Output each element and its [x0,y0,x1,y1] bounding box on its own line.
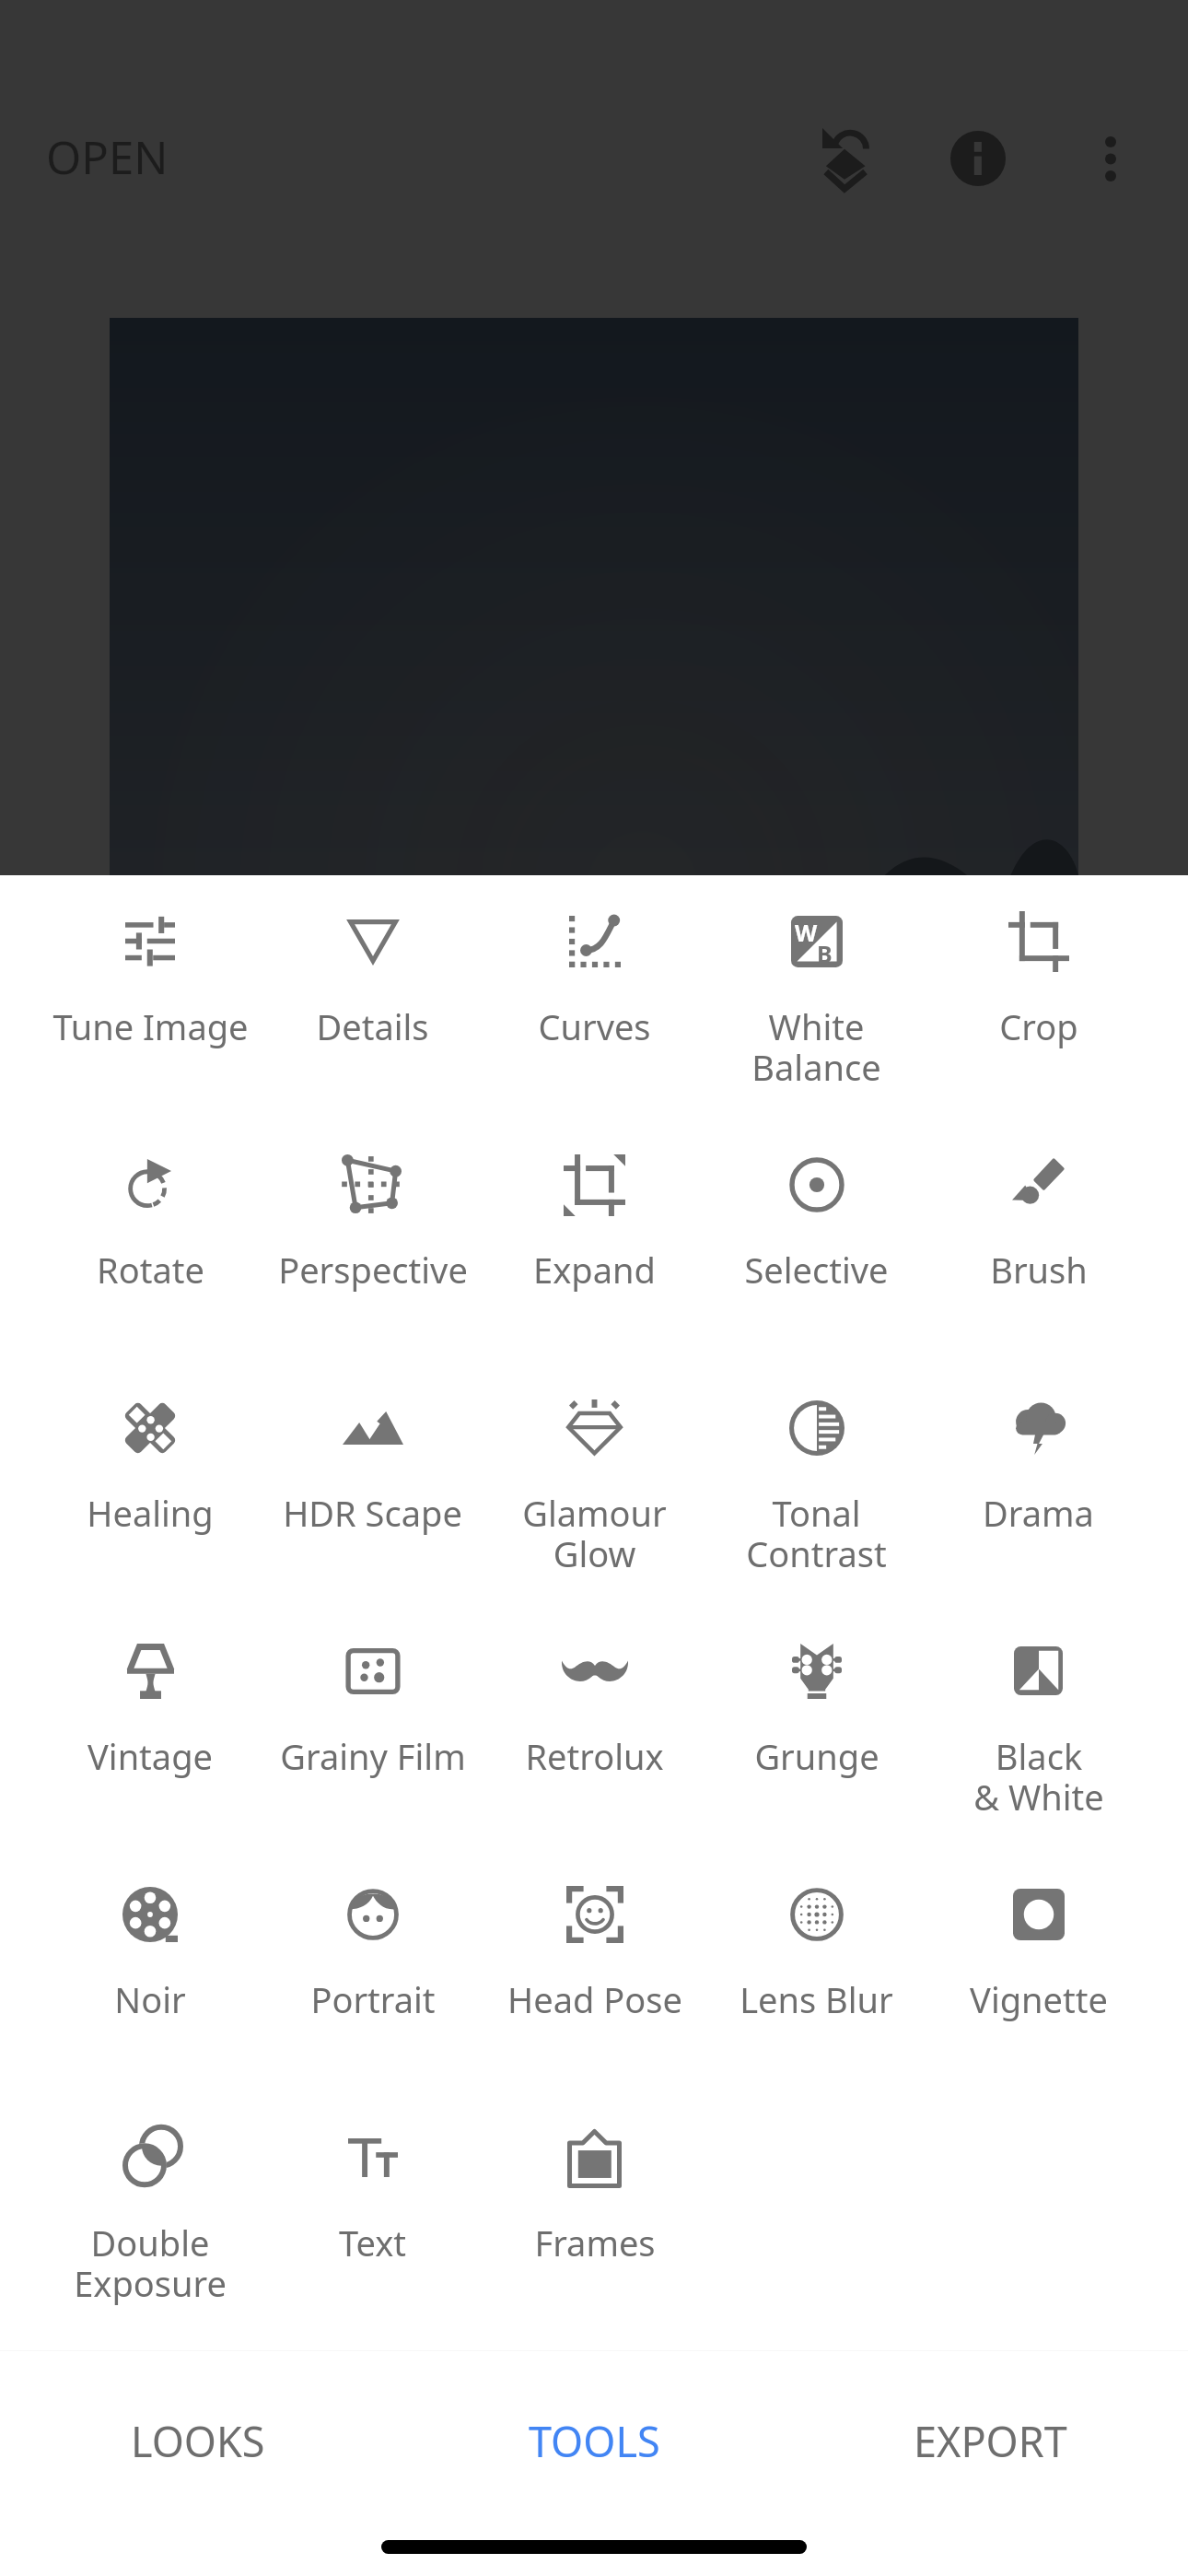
staticText: HDR Scape [283,1489,462,1537]
staticText: Healing [87,1489,214,1537]
staticText: Text [339,2219,406,2266]
button[interactable]: Text [262,2091,483,2335]
button[interactable]: LOOKS [0,2351,396,2530]
button[interactable]: Portrait [262,1848,483,2091]
staticText: Noir [114,1975,186,2023]
button[interactable]: Vintage [39,1605,262,1848]
button[interactable]: Healing [39,1362,262,1605]
staticText: Head Pose [507,1975,682,2023]
button[interactable]: Grunge [705,1605,927,1848]
staticText: B [817,938,833,969]
button[interactable]: Grainy Film [262,1605,483,1848]
button[interactable]: Curves [483,875,705,1118]
staticText: TOOLS [529,2413,660,2469]
button[interactable]: Black & White [927,1605,1149,1848]
button[interactable]: Head Pose [483,1848,705,2091]
staticText: White Balance [751,1002,881,1091]
staticText: Vintage [87,1732,213,1780]
staticText: Crop [999,1002,1078,1050]
staticText: Lens Blur [740,1975,893,2023]
button[interactable]: Selective [705,1118,927,1362]
button[interactable]: Rotate [39,1118,262,1362]
staticText: OPEN [46,126,169,188]
button[interactable]: Vignette [927,1848,1149,2091]
button[interactable]: Double Exposure [39,2091,262,2335]
button[interactable]: Frames [483,2091,705,2335]
button[interactable]: Retrolux [483,1605,705,1848]
button[interactable]: Details [262,875,483,1118]
staticText: LOOKS [131,2413,265,2469]
staticText: W [795,917,818,948]
button[interactable]: Brush [927,1118,1149,1362]
staticText: Frames [534,2219,656,2266]
button[interactable]: Perspective [262,1118,483,1362]
button[interactable]: Noir [39,1848,262,2091]
staticText: Grunge [754,1732,879,1780]
staticText: Perspective [278,1246,468,1294]
staticText: Portrait [310,1975,436,2023]
staticText: Retrolux [525,1732,664,1780]
button[interactable]: W [705,875,927,1118]
staticText: Black & White [973,1732,1104,1821]
button[interactable]: EXPORT [792,2351,1188,2530]
staticText: Selective [744,1246,889,1294]
staticText: Curves [538,1002,651,1050]
button[interactable]: More options [1060,108,1161,209]
button[interactable]: Crop [927,875,1149,1118]
button[interactable]: HDR Scape [262,1362,483,1605]
button[interactable]: Tune Image [39,875,262,1118]
button[interactable]: Drama [927,1362,1149,1605]
button[interactable]: OPEN [10,113,204,201]
button[interactable]: Lens Blur [705,1848,927,2091]
staticText: Expand [533,1246,656,1294]
staticText: Glamour Glow [522,1489,667,1577]
staticText: Brush [990,1246,1088,1294]
staticText: Tonal Contrast [746,1489,887,1577]
staticText: Double Exposure [74,2219,227,2307]
staticText: EXPORT [914,2413,1067,2469]
staticText: Details [316,1002,429,1050]
button[interactable]: Info [927,108,1029,209]
staticText: Vignette [970,1975,1108,2023]
staticText: Grainy Film [280,1732,466,1780]
button[interactable]: Glamour Glow [483,1362,705,1605]
button[interactable]: Revert [794,108,895,209]
staticText: Tune Image [52,1002,249,1050]
button[interactable]: Expand [483,1118,705,1362]
staticText: Drama [983,1489,1094,1537]
staticText: Rotate [97,1246,204,1294]
button[interactable]: Tonal Contrast [705,1362,927,1605]
button[interactable]: TOOLS [396,2351,792,2530]
